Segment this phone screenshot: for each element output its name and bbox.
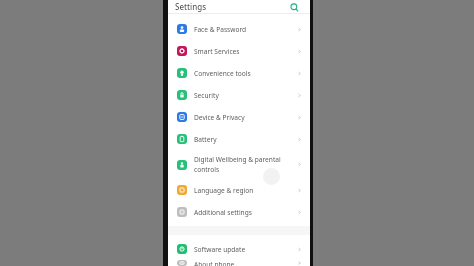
button[interactable]: Language & region [168,179,310,201]
staticText: Security [194,91,219,100]
button[interactable]: Device & Privacy [168,106,310,128]
staticText: Convenience tools [194,69,251,78]
button[interactable]: Digital Wellbeing & parental [168,150,310,179]
staticText: Device & Privacy [194,113,245,122]
button[interactable]: Convenience tools [168,62,310,84]
button[interactable]: About phone [168,260,310,266]
button[interactable]: Battery [168,128,310,150]
staticText: Additional settings [194,208,252,217]
button[interactable]: Search [288,1,300,13]
staticText: About phone [194,260,235,266]
button[interactable]: Smart Services [168,40,310,62]
staticText: Digital Wellbeing & parental [194,155,281,164]
staticText: controls [194,165,220,174]
staticText: Settings [175,1,207,12]
staticText: Software update [194,245,246,254]
staticText: Language & region [194,186,254,195]
staticText: Face & Password [194,25,247,34]
button[interactable]: Software update [168,238,310,260]
button[interactable]: Security [168,84,310,106]
button[interactable]: Additional settings [168,201,310,223]
staticText: Battery [194,135,217,144]
button[interactable]: Face & Password [168,18,310,40]
staticText: Smart Services [194,47,240,56]
